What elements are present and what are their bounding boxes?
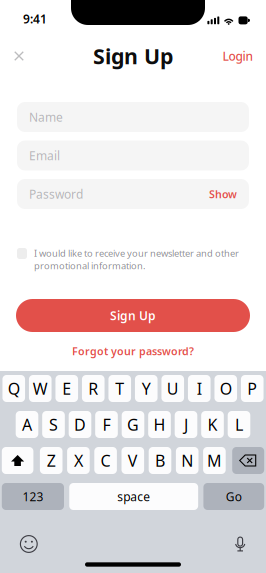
button[interactable]: Sign Up <box>0 299 266 332</box>
staticText: Y <box>142 378 151 399</box>
button[interactable]: A <box>16 411 38 438</box>
staticText: V <box>128 450 138 471</box>
button[interactable]: T <box>108 375 131 402</box>
button[interactable]: N <box>176 447 198 474</box>
staticText: K <box>207 414 217 435</box>
button[interactable]: H <box>148 411 171 438</box>
button[interactable]: 123 <box>2 483 64 510</box>
staticText: P <box>247 378 257 399</box>
staticText: Sign Up <box>93 42 173 70</box>
button[interactable]: G <box>122 411 144 438</box>
button[interactable]: W <box>29 375 52 402</box>
staticText: Login <box>222 48 253 64</box>
staticText: L <box>235 414 243 435</box>
staticText: Sign Up <box>110 307 156 323</box>
button[interactable]: Show <box>209 187 237 201</box>
staticText: W <box>33 378 48 399</box>
button[interactable]: C <box>94 447 117 474</box>
staticText: Z <box>47 450 56 471</box>
button[interactable]: Dictate <box>225 531 255 557</box>
button[interactable]: M <box>203 447 226 474</box>
staticText: D <box>74 414 86 435</box>
staticText: 123 <box>22 488 43 504</box>
staticText: Show <box>209 187 237 201</box>
button[interactable]: U <box>161 375 184 402</box>
staticText: I would like to receive your newsletter … <box>34 247 239 272</box>
button[interactable]: R <box>82 375 105 402</box>
staticText: U <box>167 378 179 399</box>
button[interactable]: Z <box>40 447 62 474</box>
staticText: Password <box>29 186 83 202</box>
staticText: H <box>153 414 165 435</box>
button[interactable]: X <box>67 447 90 474</box>
button[interactable]: Forgot your password? <box>42 340 224 362</box>
staticText: O <box>220 378 232 399</box>
staticText: Forgot your password? <box>72 344 194 358</box>
staticText: 9:41 <box>23 11 47 27</box>
staticText: T <box>115 378 124 399</box>
staticText: Email <box>29 147 60 163</box>
staticText: C <box>101 450 111 471</box>
staticText: G <box>127 414 139 435</box>
staticText: A <box>22 414 32 435</box>
staticText: Go <box>226 488 242 504</box>
staticText: R <box>88 378 98 399</box>
button[interactable]: I would like to receive your newsletter … <box>0 243 266 276</box>
button[interactable]: Delete <box>232 447 264 474</box>
button[interactable]: B <box>149 447 171 474</box>
button[interactable]: K <box>201 411 224 438</box>
button[interactable]: Go <box>203 483 264 510</box>
staticText: I <box>197 378 202 399</box>
button[interactable]: S <box>42 411 65 438</box>
button[interactable]: Emoji <box>14 531 44 557</box>
staticText: N <box>181 450 193 471</box>
staticText: F <box>102 414 110 435</box>
button[interactable]: L <box>228 411 250 438</box>
button[interactable]: J <box>175 411 197 438</box>
button[interactable]: O <box>214 375 237 402</box>
button[interactable]: Login <box>212 41 264 71</box>
button[interactable]: E <box>55 375 78 402</box>
staticText: M <box>207 450 222 471</box>
button[interactable]: D <box>69 411 91 438</box>
button[interactable]: Shift <box>2 447 33 474</box>
staticText: E <box>62 378 71 399</box>
staticText: J <box>184 414 188 435</box>
button[interactable]: I <box>188 375 211 402</box>
button[interactable]: P <box>241 375 264 402</box>
staticText: X <box>74 450 83 471</box>
button[interactable]: Close <box>2 41 36 71</box>
button[interactable]: F <box>95 411 118 438</box>
staticText: Name <box>29 109 63 125</box>
staticText: space <box>117 488 150 504</box>
button[interactable]: Y <box>135 375 158 402</box>
button[interactable]: V <box>121 447 144 474</box>
staticText: B <box>155 450 165 471</box>
staticText: S <box>49 414 58 435</box>
button[interactable]: space <box>69 483 198 510</box>
button[interactable]: Q <box>2 375 25 402</box>
staticText: Q <box>8 378 20 399</box>
